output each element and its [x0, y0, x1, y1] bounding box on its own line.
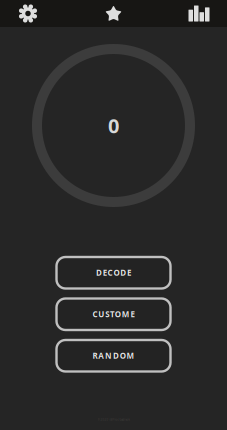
button[interactable]: Settings: [9, 0, 47, 27]
button[interactable]: DECODE: [56, 257, 170, 288]
button[interactable]: Favorites: [94, 0, 132, 27]
staticText: RANDOM: [92, 350, 135, 361]
staticText: DECODE: [96, 267, 131, 278]
button[interactable]: Statistics: [180, 0, 218, 27]
staticText: © 2020 iBProc Gadivok: [97, 418, 129, 421]
button[interactable]: CUSTOME: [56, 298, 170, 330]
button[interactable]: RANDOM: [56, 340, 170, 371]
staticText: 0: [108, 112, 119, 139]
staticText: CUSTOME: [92, 309, 135, 319]
